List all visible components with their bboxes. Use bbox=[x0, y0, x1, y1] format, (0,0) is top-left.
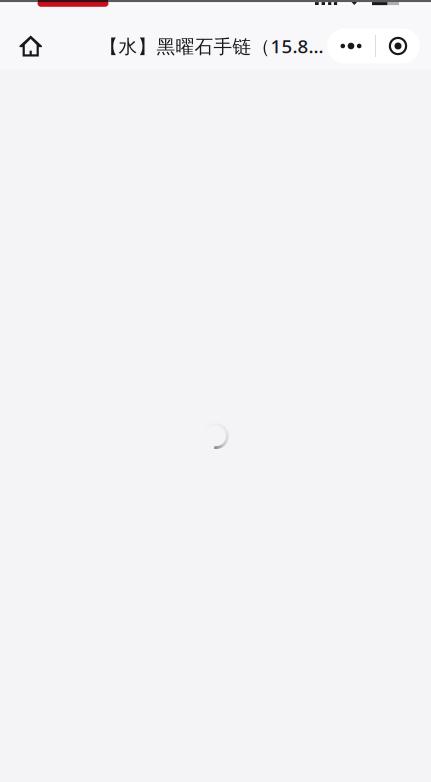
button[interactable]: More options bbox=[327, 28, 375, 63]
button[interactable]: Home bbox=[9, 17, 53, 75]
button[interactable]: Close mini program bbox=[376, 28, 420, 63]
staticText: 【水】黑曜石手链（15.8... bbox=[99, 34, 323, 58]
